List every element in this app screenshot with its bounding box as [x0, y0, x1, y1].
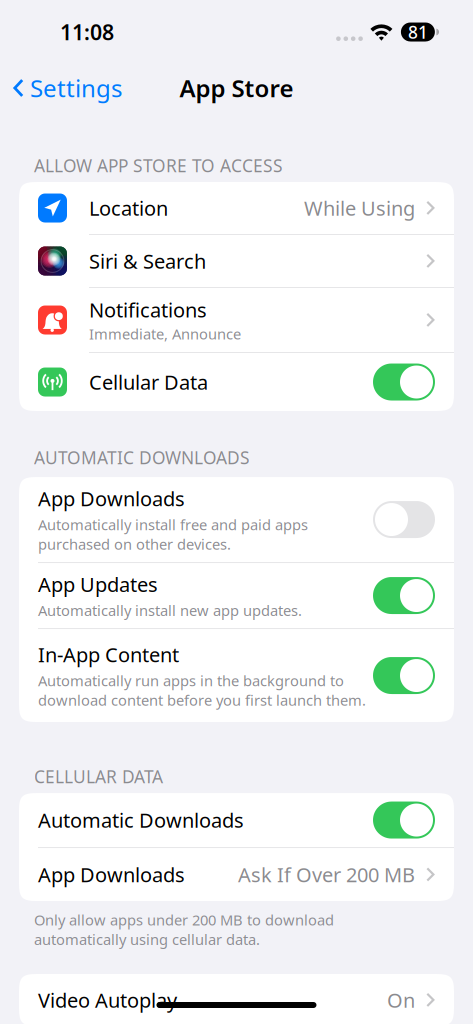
button[interactable] — [373, 577, 435, 614]
button[interactable] — [373, 501, 435, 538]
staticText: Siri & Search — [89, 248, 206, 274]
staticText: Automatically run apps in the background… — [38, 671, 366, 710]
staticText: 11:08 — [60, 18, 114, 46]
staticText: Automatically install free and paid apps… — [38, 515, 308, 554]
button[interactable] — [373, 802, 435, 839]
staticText: App Updates — [38, 571, 158, 598]
staticText: 81 — [408, 20, 428, 43]
staticText: CELLULAR DATA — [34, 765, 163, 788]
button[interactable]: App Downloads — [19, 848, 454, 901]
staticText: Ask If Over 200 MB — [238, 861, 415, 888]
button[interactable]: Notifications — [19, 288, 454, 352]
staticText: App Downloads — [38, 485, 185, 512]
staticText: Settings — [30, 72, 122, 104]
staticText: AUTOMATIC DOWNLOADS — [34, 446, 250, 469]
button[interactable]: Location — [19, 182, 454, 234]
staticText: ALLOW APP STORE TO ACCESS — [34, 154, 283, 177]
button[interactable]: Siri & Search — [19, 235, 454, 287]
staticText: Notifications — [89, 296, 207, 323]
staticText: On — [387, 987, 415, 1013]
staticText: App Store — [179, 72, 293, 104]
staticText: Only allow apps under 200 MB to download… — [34, 910, 334, 949]
staticText: Automatic Downloads — [38, 807, 244, 833]
button[interactable]: Settings — [0, 65, 122, 111]
staticText: Video Autoplay — [38, 987, 177, 1013]
staticText: App Downloads — [38, 861, 185, 888]
staticText: While Using — [304, 195, 415, 221]
staticText: Location — [89, 195, 168, 221]
staticText: Immediate, Announce — [89, 324, 241, 344]
staticText: Cellular Data — [89, 369, 208, 395]
button[interactable]: Video Autoplay — [19, 974, 454, 1024]
staticText: Automatically install new app updates. — [38, 601, 302, 620]
button[interactable] — [373, 657, 435, 694]
button[interactable] — [373, 363, 435, 400]
staticText: In-App Content — [38, 641, 179, 668]
